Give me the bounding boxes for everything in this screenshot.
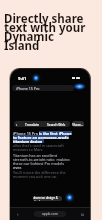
- staticText: ‹: [17, 211, 19, 218]
- staticText: strength-to-weight ratio, making: [13, 157, 70, 161]
- staticText: 9:41: [18, 76, 27, 82]
- staticText: is the first iPhone: [39, 131, 72, 135]
- button[interactable]: iPhone 15 Pro: [12, 85, 74, 91]
- staticText: Share on design & display: [33, 196, 62, 201]
- button[interactable]: Tabs: [79, 211, 86, 218]
- button[interactable]: Share…: [72, 121, 84, 127]
- staticText: Share…: [72, 122, 84, 126]
- staticText: titanium design,: [13, 139, 44, 143]
- staticText: Search Web: [47, 122, 66, 126]
- button[interactable]: Back: [14, 211, 21, 218]
- staticText: Translate: [25, 122, 40, 126]
- staticText: apple.com: [42, 212, 58, 216]
- staticText: iPhone 15 Pro: [16, 86, 40, 91]
- staticText: missions to Mars.: [13, 147, 44, 151]
- staticText: alloy that's used in spacecraft: [13, 143, 64, 147]
- staticText: You'll notice the difference the: [13, 170, 66, 174]
- button[interactable]: apple.com: [34, 211, 66, 217]
- button[interactable]: ‹: [14, 121, 70, 127]
- staticText: moment you pick one up.: [13, 174, 58, 178]
- staticText: iPhone 15 Pro: [13, 131, 39, 135]
- staticText: ever.: [13, 165, 22, 169]
- staticText: ⧉: [81, 213, 84, 217]
- staticText: Directly share text with your Dynamic Is…: [4, 11, 86, 54]
- staticText: to feature an aerospace-grade: [13, 135, 69, 139]
- staticText: these our lightest Pro models: [13, 161, 65, 165]
- staticText: ‹: [16, 122, 18, 127]
- button[interactable]: Share on design & display: [33, 196, 62, 201]
- staticText: Titanium has an excellent: [13, 153, 58, 157]
